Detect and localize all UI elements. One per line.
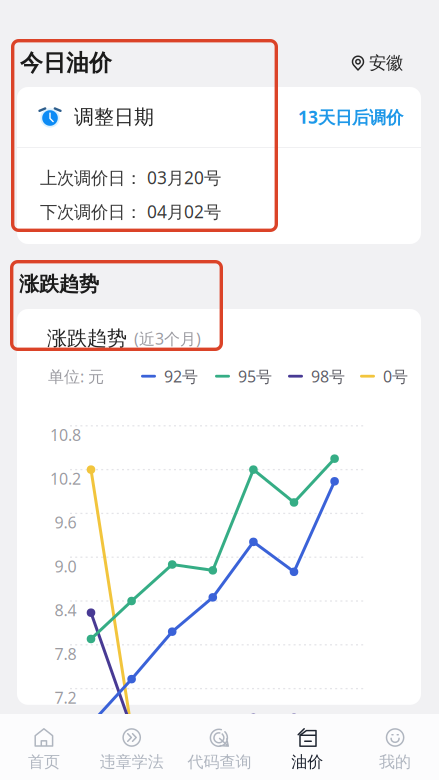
button[interactable]: 13天日后调价 [298, 105, 403, 128]
staticText: 油价 [291, 752, 323, 772]
button[interactable]: 油价 [263, 714, 351, 780]
button[interactable]: 安徽 [352, 52, 403, 74]
staticText: 13天日后调价 [298, 105, 403, 128]
button[interactable]: 代码查询 [176, 714, 263, 780]
button[interactable]: 我的 [351, 714, 439, 780]
staticText: 今日油价 [20, 49, 112, 77]
staticText: 涨跌趋势 [19, 272, 99, 296]
staticText: 92号 [164, 366, 198, 387]
staticText: 7.2 [54, 687, 76, 708]
staticText: 单位: 元 [48, 366, 104, 387]
button[interactable]: 首页 [0, 714, 88, 780]
staticText: 10.8 [50, 424, 81, 445]
staticText: 95号 [238, 366, 272, 387]
staticText: 10.2 [50, 468, 81, 489]
staticText: 98号 [311, 366, 345, 387]
staticText: 0号 [383, 366, 408, 387]
staticText: 下次调价日： 04月02号 [40, 200, 221, 223]
staticText: 安徽 [369, 52, 403, 74]
staticText: (近3个月) [134, 328, 201, 349]
staticText: 9.0 [54, 556, 76, 577]
staticText: 8.4 [54, 599, 76, 621]
staticText: 调整日期 [74, 105, 154, 129]
staticText: 违章学法 [100, 752, 164, 772]
staticText: 首页 [28, 752, 60, 772]
staticText: 代码查询 [187, 752, 251, 772]
button[interactable]: 违章学法 [88, 714, 176, 780]
staticText: 我的 [379, 752, 411, 772]
staticText: 涨跌趋势 [47, 326, 127, 351]
staticText: 7.8 [54, 643, 76, 664]
staticText: 9.6 [54, 512, 76, 533]
staticText: 上次调价日： 03月20号 [40, 166, 221, 189]
